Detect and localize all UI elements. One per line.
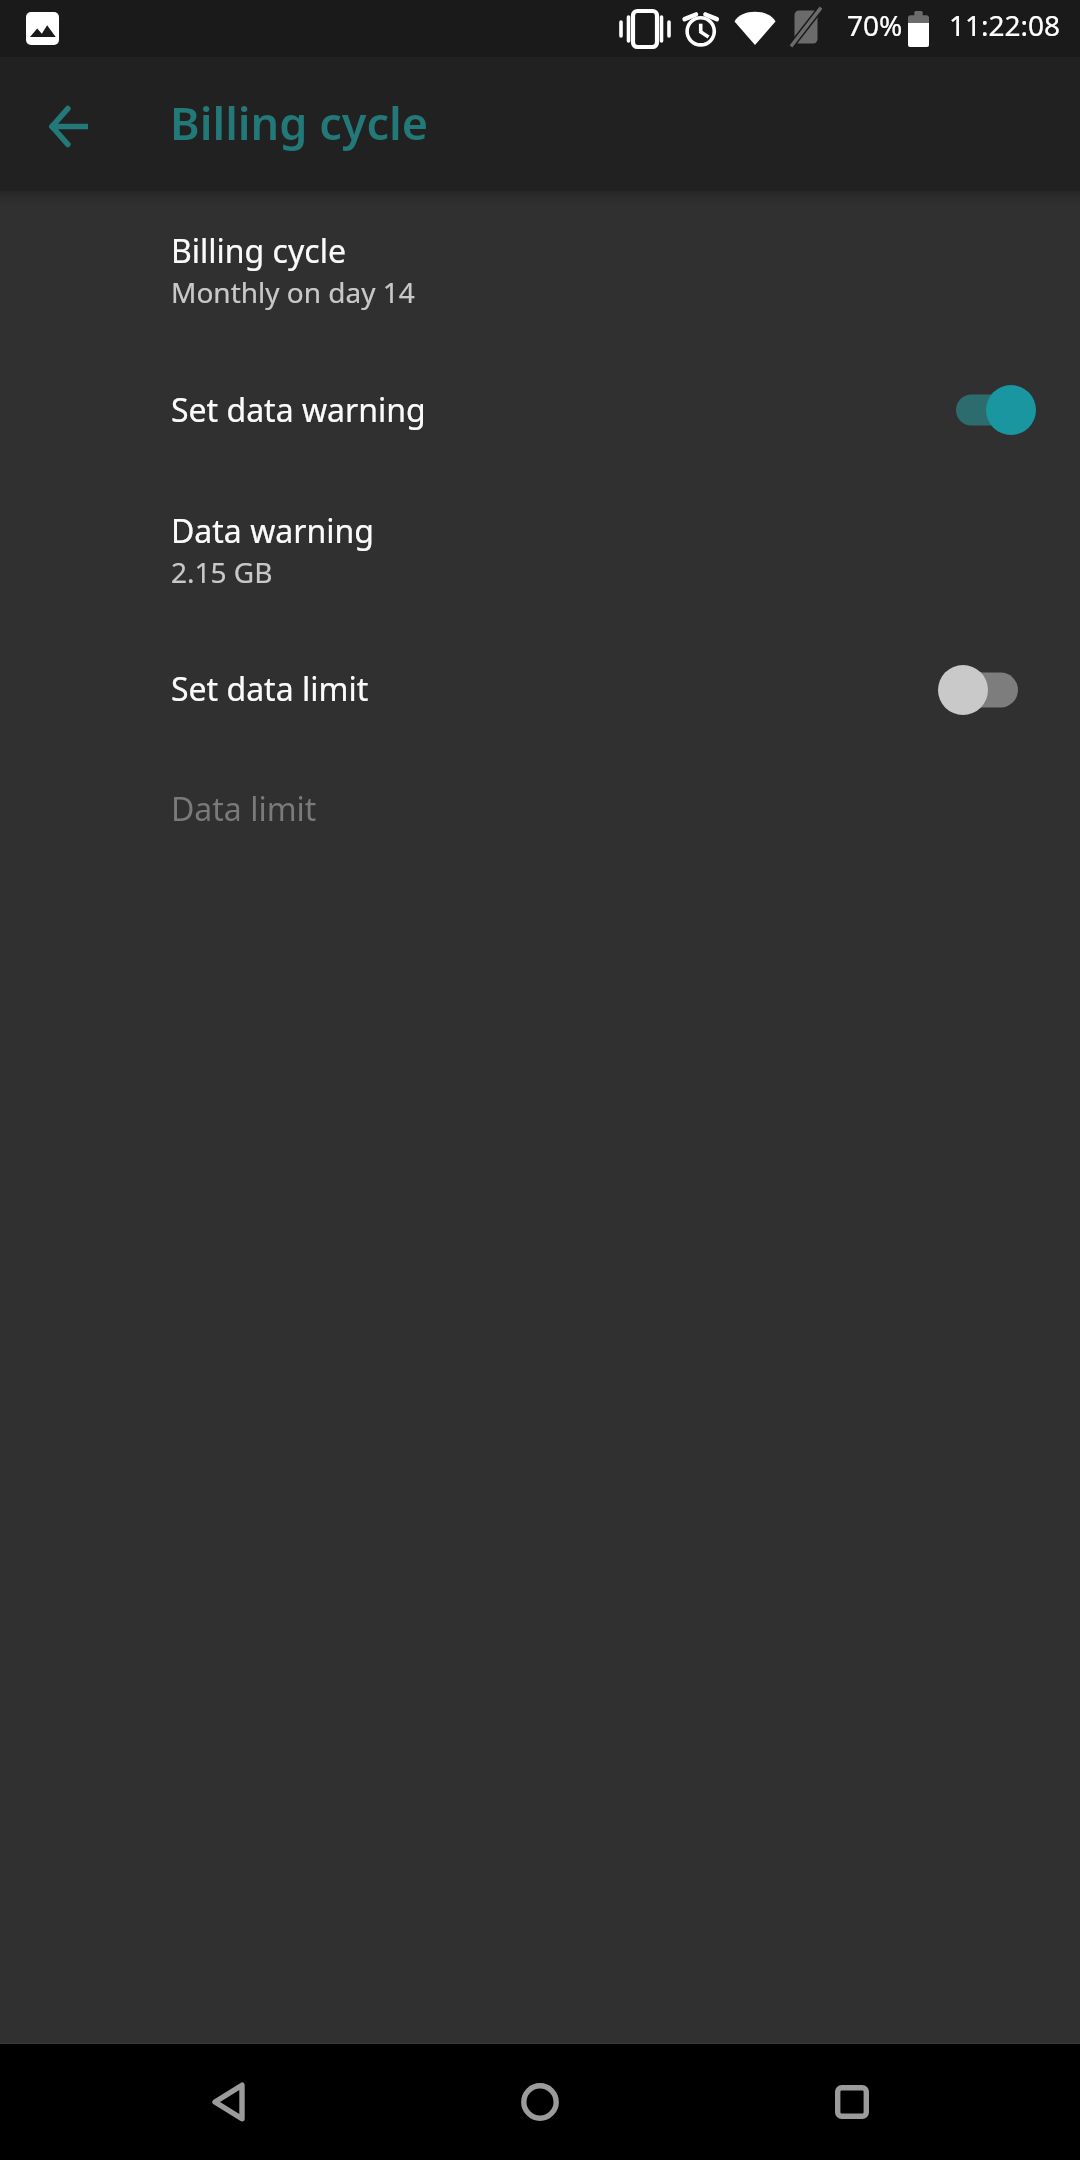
staticText: Billing cycle [170, 92, 429, 153]
button[interactable]: Navigate up [19, 76, 115, 172]
button[interactable]: Set data limit [0, 620, 1080, 740]
staticText: 70% [847, 6, 903, 44]
button[interactable]: Set data warning [0, 340, 1080, 460]
staticText: Billing cycle [171, 229, 346, 273]
staticText: Data limit [171, 787, 317, 831]
staticText: 2.15 GB [171, 553, 273, 591]
staticText: Set data limit [171, 667, 369, 711]
button[interactable]: Data warning [0, 460, 1080, 597]
staticText: 11:22:08 [949, 6, 1061, 44]
button[interactable]: Billing cycle [0, 203, 1080, 340]
button[interactable]: Back [168, 2043, 288, 2160]
staticText: Data warning [171, 509, 374, 553]
button[interactable]: Recent apps [792, 2043, 912, 2160]
staticText: Monthly on day 14 [171, 273, 415, 311]
staticText: Set data warning [171, 388, 426, 432]
button[interactable]: Home [480, 2043, 600, 2160]
